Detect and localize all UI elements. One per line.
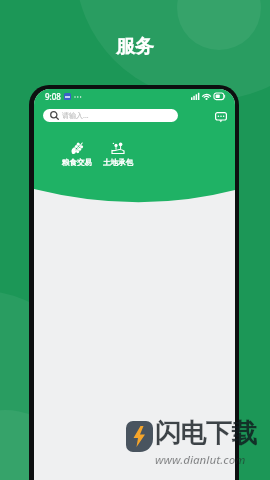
staticText: 9:08: [45, 91, 61, 102]
button[interactable]: 请输入...: [43, 109, 178, 122]
staticText: 服务: [0, 35, 270, 59]
button[interactable]: 土地承包: [99, 141, 136, 167]
staticText: 闪电下载: [155, 417, 257, 450]
button[interactable]: 粮食交易: [58, 141, 95, 167]
staticText: 土地承包: [103, 158, 133, 167]
staticText: 粮食交易: [62, 158, 92, 167]
staticText: www.dianlut.com: [155, 452, 246, 468]
staticText: 请输入...: [62, 111, 89, 121]
button[interactable]: [215, 112, 227, 123]
